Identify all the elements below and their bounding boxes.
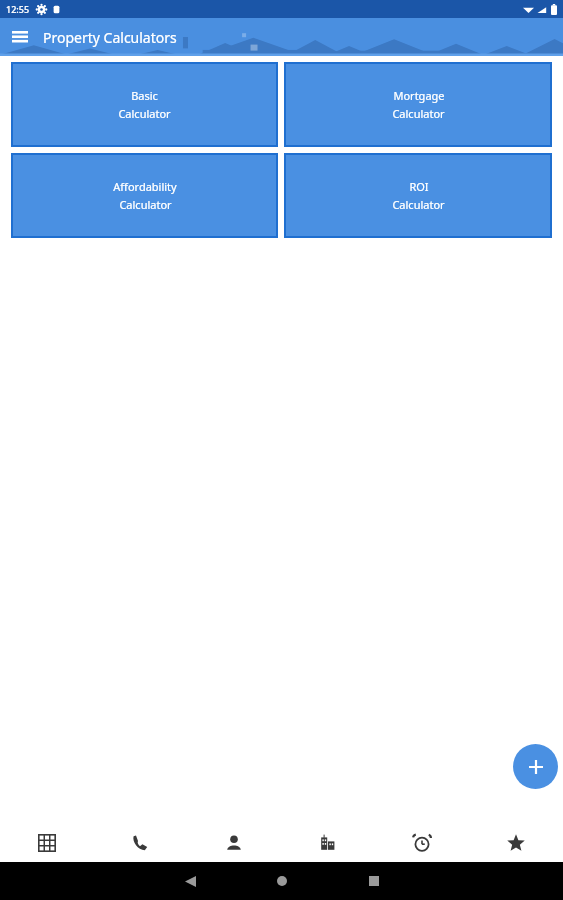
button[interactable]: Mortgage bbox=[284, 62, 552, 147]
button[interactable]: Add bbox=[513, 744, 558, 789]
button[interactable]: ROI bbox=[284, 153, 552, 238]
staticText: 12:55 bbox=[6, 3, 30, 15]
button[interactable]: Properties bbox=[281, 824, 375, 862]
staticText: Calculator bbox=[392, 197, 445, 212]
button[interactable]: Menu bbox=[11, 28, 29, 46]
staticText: Calculator bbox=[118, 106, 171, 121]
staticText: Property Calculators bbox=[43, 28, 177, 47]
staticText: Basic bbox=[131, 88, 158, 103]
button[interactable]: Alarm bbox=[375, 824, 469, 862]
staticText: Calculator bbox=[392, 106, 445, 121]
staticText: Affordability bbox=[113, 179, 177, 194]
button[interactable]: Favorites bbox=[469, 824, 563, 862]
button[interactable]: Basic bbox=[11, 62, 278, 147]
button[interactable]: Contacts bbox=[187, 824, 281, 862]
button[interactable]: Calls bbox=[93, 824, 187, 862]
staticText: Mortgage bbox=[393, 88, 445, 103]
button[interactable]: Keypad bbox=[0, 824, 93, 862]
staticText: ROI bbox=[409, 179, 429, 194]
button[interactable]: Affordability bbox=[11, 153, 278, 238]
staticText: Calculator bbox=[119, 197, 172, 212]
button[interactable]: Home bbox=[265, 864, 299, 898]
button[interactable]: Back bbox=[173, 864, 207, 898]
button[interactable]: Recents bbox=[357, 864, 391, 898]
